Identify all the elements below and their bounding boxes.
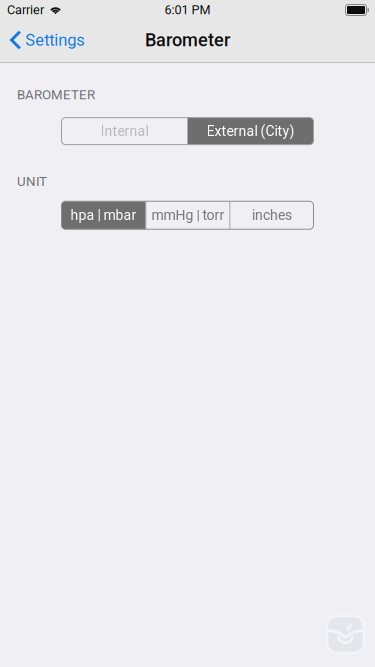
button[interactable]: Settings bbox=[0, 24, 95, 59]
button[interactable]: External (City) bbox=[187, 118, 313, 145]
button[interactable]: hpa | mbar bbox=[61, 201, 145, 229]
staticText: Carrier bbox=[7, 3, 44, 17]
staticText: Barometer bbox=[145, 29, 230, 51]
staticText: inches bbox=[252, 207, 292, 223]
staticText: mmHg | torr bbox=[151, 207, 224, 223]
staticText: BAROMETER bbox=[17, 87, 95, 103]
staticText: Internal bbox=[100, 123, 148, 139]
button[interactable]: inches bbox=[230, 201, 313, 229]
staticText: hpa | mbar bbox=[70, 207, 136, 223]
staticText: Settings bbox=[25, 30, 85, 50]
button[interactable]: mmHg | torr bbox=[146, 201, 229, 229]
button[interactable]: Internal bbox=[61, 118, 187, 145]
staticText: UNIT bbox=[17, 174, 47, 189]
staticText: 6:01 PM bbox=[164, 3, 210, 17]
staticText: External (City) bbox=[206, 123, 294, 139]
